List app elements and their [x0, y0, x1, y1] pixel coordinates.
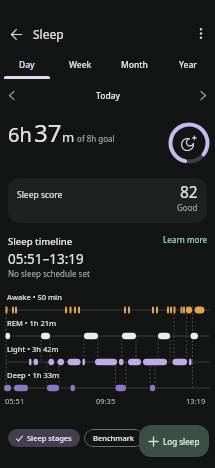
staticText: REM • 1h 21m: [7, 318, 57, 328]
staticText: Good: [177, 202, 198, 213]
staticText: 13:19: [186, 396, 206, 406]
staticText: Sleep stages: [27, 433, 72, 443]
staticText: Month: [121, 59, 148, 71]
staticText: 6h: [8, 121, 32, 148]
staticText: Light • 3h 42m: [7, 344, 59, 354]
staticText: Today: [96, 90, 120, 102]
button[interactable]: Learn more: [160, 231, 210, 247]
button[interactable]: [195, 87, 212, 104]
staticText: Sleep score: [17, 189, 63, 201]
staticText: 05:51–13:19: [8, 250, 84, 268]
staticText: Week: [69, 59, 92, 71]
staticText: Sleep timeline: [8, 235, 73, 248]
button[interactable]: Log sleep: [139, 425, 209, 457]
staticText: m: [62, 128, 75, 146]
button[interactable]: [3, 87, 20, 104]
button[interactable]: Sleep score: [8, 178, 207, 223]
staticText: Benchmark: [93, 433, 135, 443]
staticText: No sleep schedule set: [8, 268, 90, 279]
button[interactable]: [190, 23, 211, 44]
button[interactable]: Month: [107, 53, 161, 77]
staticText: 82: [180, 181, 198, 202]
button[interactable]: Week: [53, 53, 107, 77]
staticText: Day: [19, 59, 35, 71]
staticText: 37: [34, 116, 62, 149]
button[interactable]: Sleep stages: [8, 429, 80, 447]
staticText: Year: [179, 59, 197, 71]
staticText: Deep • 1h 33m: [7, 370, 60, 380]
button[interactable]: [5, 23, 27, 45]
staticText: Learn more: [163, 234, 208, 245]
staticText: Awake • 50 min: [7, 292, 62, 302]
staticText: 05:51: [5, 396, 25, 406]
button[interactable]: Year: [161, 53, 215, 77]
button[interactable]: Benchmark: [84, 429, 144, 447]
staticText: Log sleep: [163, 436, 200, 447]
staticText: 09:35: [96, 396, 116, 406]
staticText: Sleep: [33, 26, 64, 42]
button[interactable]: Day: [0, 53, 53, 77]
staticText: of 8h goal: [75, 133, 115, 144]
